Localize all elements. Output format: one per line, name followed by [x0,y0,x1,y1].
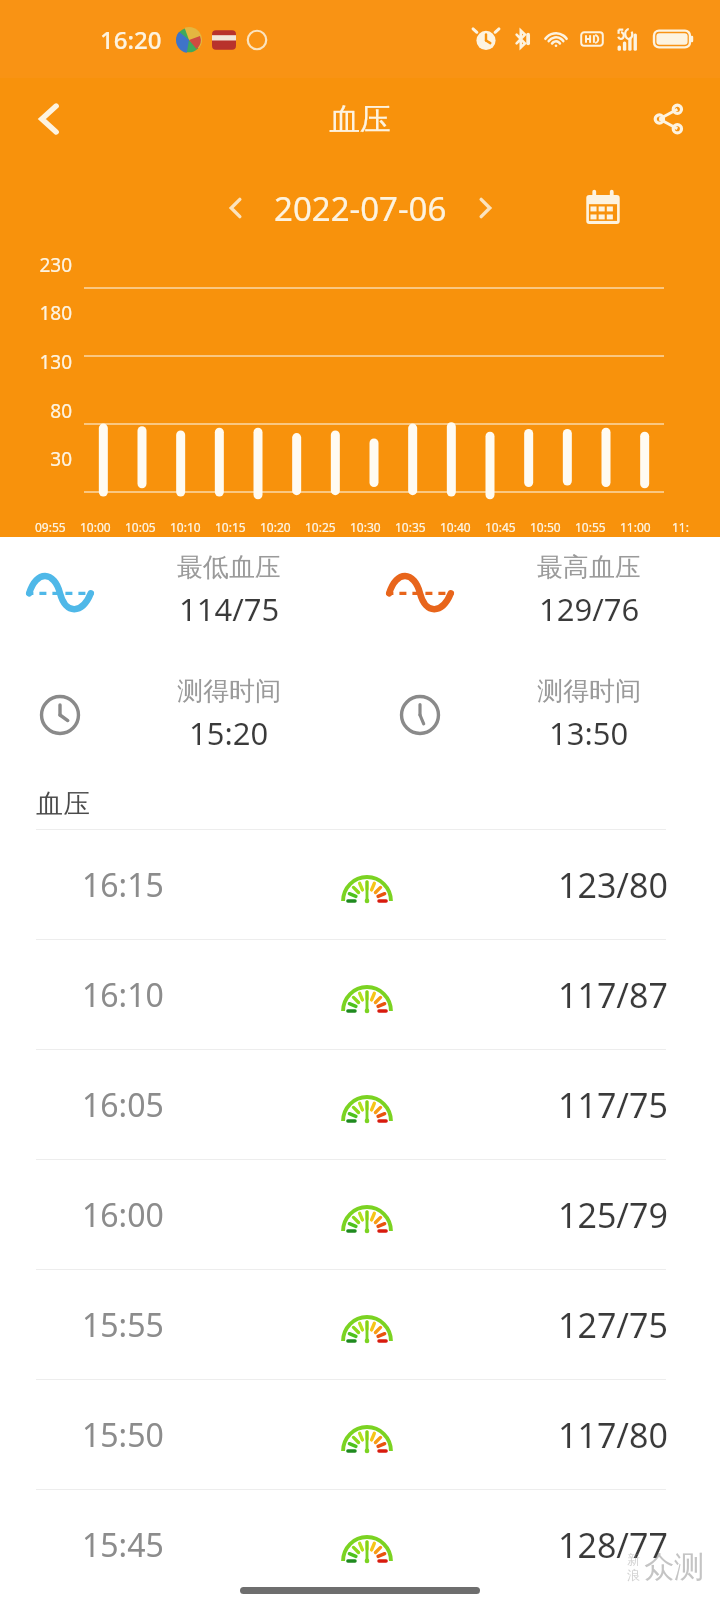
staticText: 最低血压 [177,551,281,584]
staticText: 16:05 [82,1083,164,1127]
staticText: 125/79 [558,1192,668,1238]
staticText: 众测 [644,1548,704,1586]
staticText: 230 [14,252,72,278]
button[interactable]: 后一天 [461,184,509,232]
staticText: 15:50 [82,1413,164,1457]
staticText: 80 [14,398,72,424]
staticText: 10:50 [530,519,561,535]
button[interactable]: 测得时间 [0,675,360,754]
staticText: 最高血压 [537,551,641,584]
staticText: 测得时间 [537,675,641,708]
staticText: 117/75 [558,1082,668,1128]
button[interactable]: 15:45 [0,1490,720,1599]
staticText: 10:35 [395,519,426,535]
button[interactable]: 16:00 [0,1160,720,1269]
button[interactable]: 最高血压 [360,551,720,630]
staticText: 180 [14,300,72,326]
staticText: 09:55 [35,519,66,535]
staticText: 10:00 [80,519,111,535]
staticText: 2022-07-06 [274,186,447,231]
staticText: 测得时间 [177,675,281,708]
staticText: 16:00 [82,1193,164,1237]
staticText: 114/75 [179,588,280,630]
staticText: 10:20 [260,519,291,535]
button[interactable]: 选择日期 [574,179,632,237]
button[interactable]: 16:10 [0,940,720,1049]
staticText: 16:20 [100,23,162,56]
staticText: 10:55 [575,519,606,535]
button[interactable]: 16:15 [0,830,720,939]
button[interactable]: 15:50 [0,1380,720,1489]
staticText: 10:30 [350,519,381,535]
staticText: 10:10 [170,519,201,535]
staticText: 新 [627,1551,640,1567]
staticText: 13:50 [549,712,629,754]
staticText: 30 [14,446,72,472]
button[interactable]: 15:55 [0,1270,720,1379]
staticText: 16:10 [82,973,164,1017]
button[interactable]: 返回 [18,87,82,151]
staticText: 浪 [627,1567,640,1583]
staticText: 117/80 [558,1412,668,1458]
staticText: 15:45 [82,1523,164,1567]
button[interactable]: 前一天 [212,184,260,232]
staticText: 血压 [329,100,391,139]
staticText: 117/87 [558,972,668,1018]
staticText: 15:55 [82,1303,164,1347]
staticText: 129/76 [539,588,640,630]
staticText: 11:00 [620,519,651,535]
staticText: 16:15 [82,863,164,907]
staticText: 127/75 [558,1302,668,1348]
staticText: 128/77 [558,1522,668,1568]
staticText: 10:05 [125,519,156,535]
staticText: 11: [672,519,689,535]
staticText: 10:15 [215,519,246,535]
staticText: 130 [14,349,72,375]
button[interactable]: 最低血压 [0,551,360,630]
staticText: 10:40 [440,519,471,535]
button[interactable]: 16:05 [0,1050,720,1159]
staticText: 123/80 [558,862,668,908]
staticText: 血压 [36,787,90,821]
button[interactable]: 测得时间 [360,675,720,754]
button[interactable]: 分享 [636,87,700,151]
staticText: 10:25 [305,519,336,535]
staticText: 10:45 [485,519,516,535]
staticText: 15:20 [189,712,269,754]
